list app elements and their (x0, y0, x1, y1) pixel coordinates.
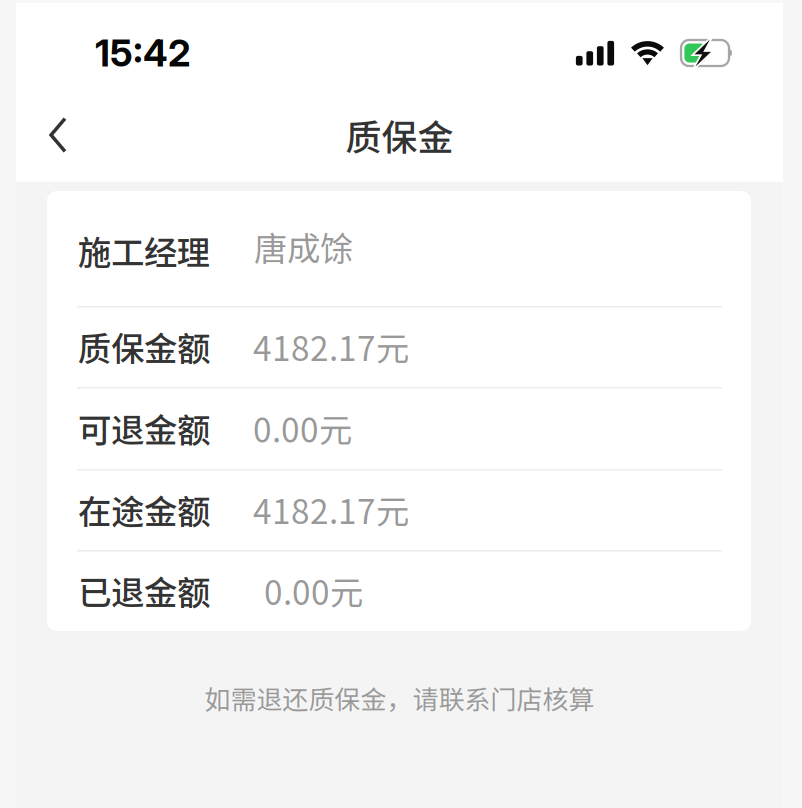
staticText: 15:42 (95, 30, 191, 76)
staticText: 0.00元 (253, 404, 352, 452)
staticText: 如需退还质保金，请联系门店核算 (204, 679, 594, 717)
button[interactable]: Back (32, 103, 84, 167)
staticText: 唐成馀 (254, 222, 353, 271)
staticText: 4182.17元 (253, 485, 409, 534)
staticText: 已退金额 (78, 566, 210, 615)
staticText: 4182.17元 (253, 322, 409, 371)
staticText: 质保金 (345, 109, 453, 161)
staticText: 施工经理 (78, 226, 210, 275)
staticText: 0.00元 (264, 566, 363, 615)
staticText: 在途金额 (78, 485, 210, 534)
staticText: 质保金额 (78, 322, 210, 371)
staticText: 可退金额 (78, 404, 210, 452)
